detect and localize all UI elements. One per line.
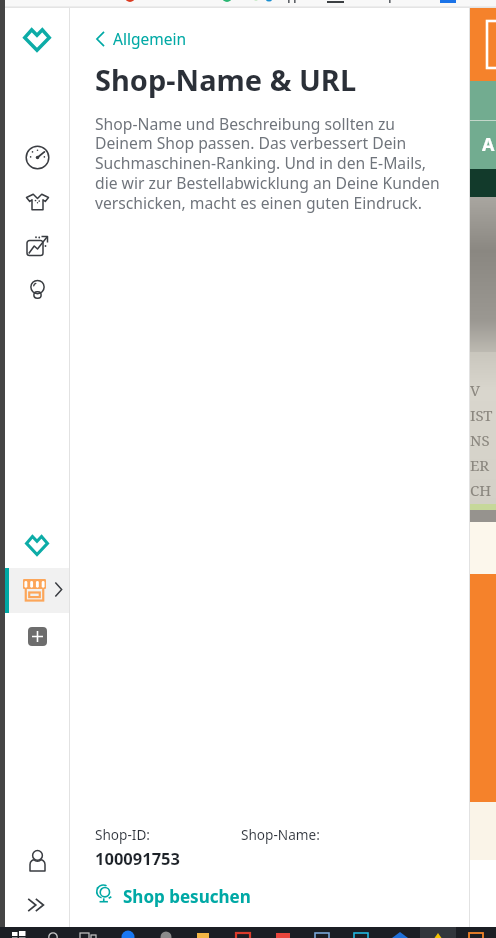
staticText: Shop-Name: [241,825,320,844]
button[interactable]: Add shop [5,618,69,654]
staticText: A [482,132,495,157]
button[interactable]: Shop besuchen [95,885,251,908]
button[interactable]: Dashboard [5,143,69,171]
button[interactable]: Shop [5,568,69,613]
button[interactable]: Allgemein [95,28,186,49]
button[interactable]: Marketing [5,231,69,259]
button[interactable]: Home [5,20,69,60]
staticText: ER [470,455,494,480]
button[interactable]: Tips [5,275,69,303]
button[interactable]: Products [5,187,69,215]
staticText: CHE [470,480,496,505]
staticText: Shop-Name & URL [95,60,357,99]
button[interactable]: Account [5,847,69,875]
staticText: NSC [470,430,496,455]
staticText: Shop-ID: [95,825,151,844]
staticText: 100091753 [95,847,180,869]
staticText: IST [470,405,493,430]
staticText: V W [470,380,496,405]
button[interactable]: Expand menu [5,891,69,919]
staticText: Shop-Name und Beschreibung sollten zu De… [95,113,451,214]
button[interactable]: Brand [5,525,69,565]
staticText: Allgemein [113,28,186,49]
staticText: Shop besuchen [123,885,251,908]
